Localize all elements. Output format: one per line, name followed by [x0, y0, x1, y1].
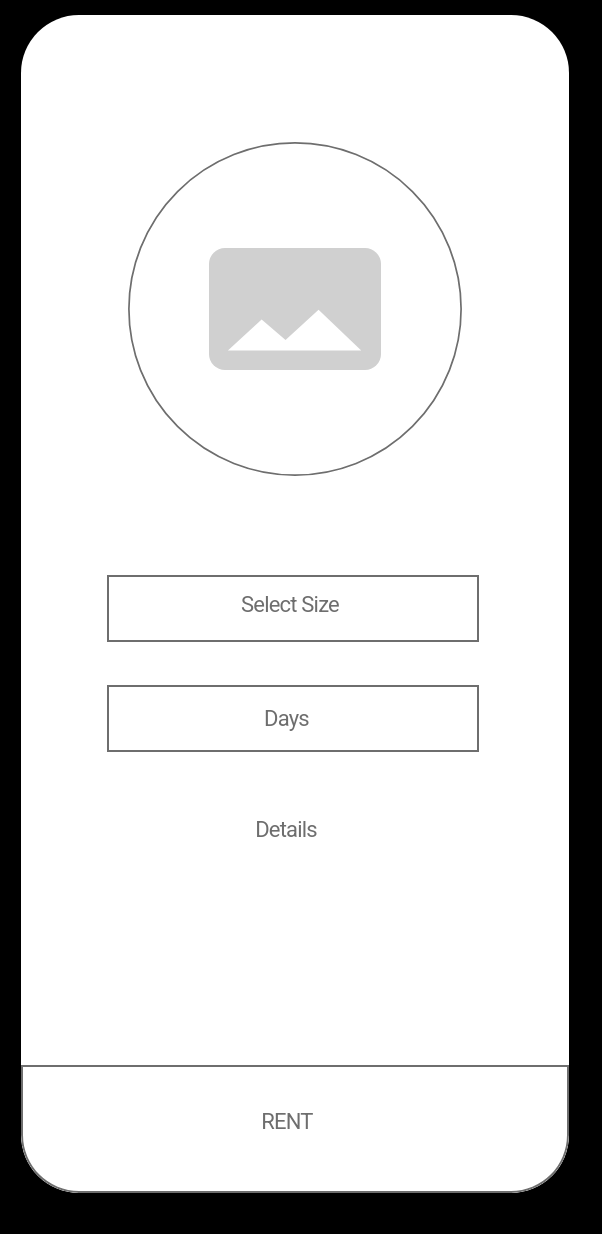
- staticText: Select Size: [241, 592, 339, 618]
- button[interactable]: Days: [107, 685, 479, 752]
- staticText: RENT: [261, 1109, 313, 1135]
- button[interactable]: Details: [21, 815, 569, 845]
- staticText: Details: [255, 817, 317, 843]
- staticText: Days: [264, 706, 309, 732]
- button[interactable]: RENT: [21, 1065, 569, 1193]
- button[interactable]: Select Size: [107, 575, 479, 642]
- button[interactable]: Add product photo: [128, 142, 462, 476]
